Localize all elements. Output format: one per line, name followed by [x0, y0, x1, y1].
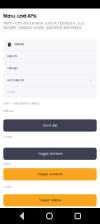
staticText: Cycle size — [42, 124, 57, 127]
staticText: Settings — [7, 67, 17, 70]
staticText: 3 — [90, 79, 92, 82]
button[interactable]: Recents — [72, 210, 83, 222]
button[interactable]: Settings — [3, 63, 97, 74]
button[interactable]: Reports — [3, 51, 97, 62]
button[interactable]: Toggle Visible — [3, 194, 97, 206]
staticText: Toggle dividers — [38, 152, 62, 155]
staticText: Dividers — [3, 135, 12, 138]
button[interactable]: Back — [17, 209, 27, 223]
staticText: Notifications — [7, 79, 23, 82]
staticText: Reports — [7, 55, 17, 58]
staticText: Toggle Enabled — [37, 173, 62, 176]
staticText: Menu: Level APIs — [3, 14, 36, 19]
button[interactable]: Toggle dividers — [3, 148, 97, 160]
staticText: Reset — menu restored to defaults — [3, 102, 39, 105]
staticText: Menu-level and dynamic runtime operation… — [3, 21, 85, 30]
staticText: Menu Size — [3, 110, 13, 112]
staticText: Enabled — [3, 162, 10, 165]
button[interactable]: Toggle Enabled — [3, 168, 97, 180]
button[interactable]: Notifications — [3, 75, 97, 86]
staticText: Visible — [3, 186, 11, 188]
staticText: Toggle Visible — [39, 199, 61, 202]
button[interactable]: Home — [43, 210, 55, 222]
button[interactable]: Cycle size — [3, 119, 97, 132]
staticText: Locked — [7, 91, 15, 94]
staticText: Overview — [14, 43, 24, 46]
button[interactable]: Overview — [3, 39, 97, 50]
